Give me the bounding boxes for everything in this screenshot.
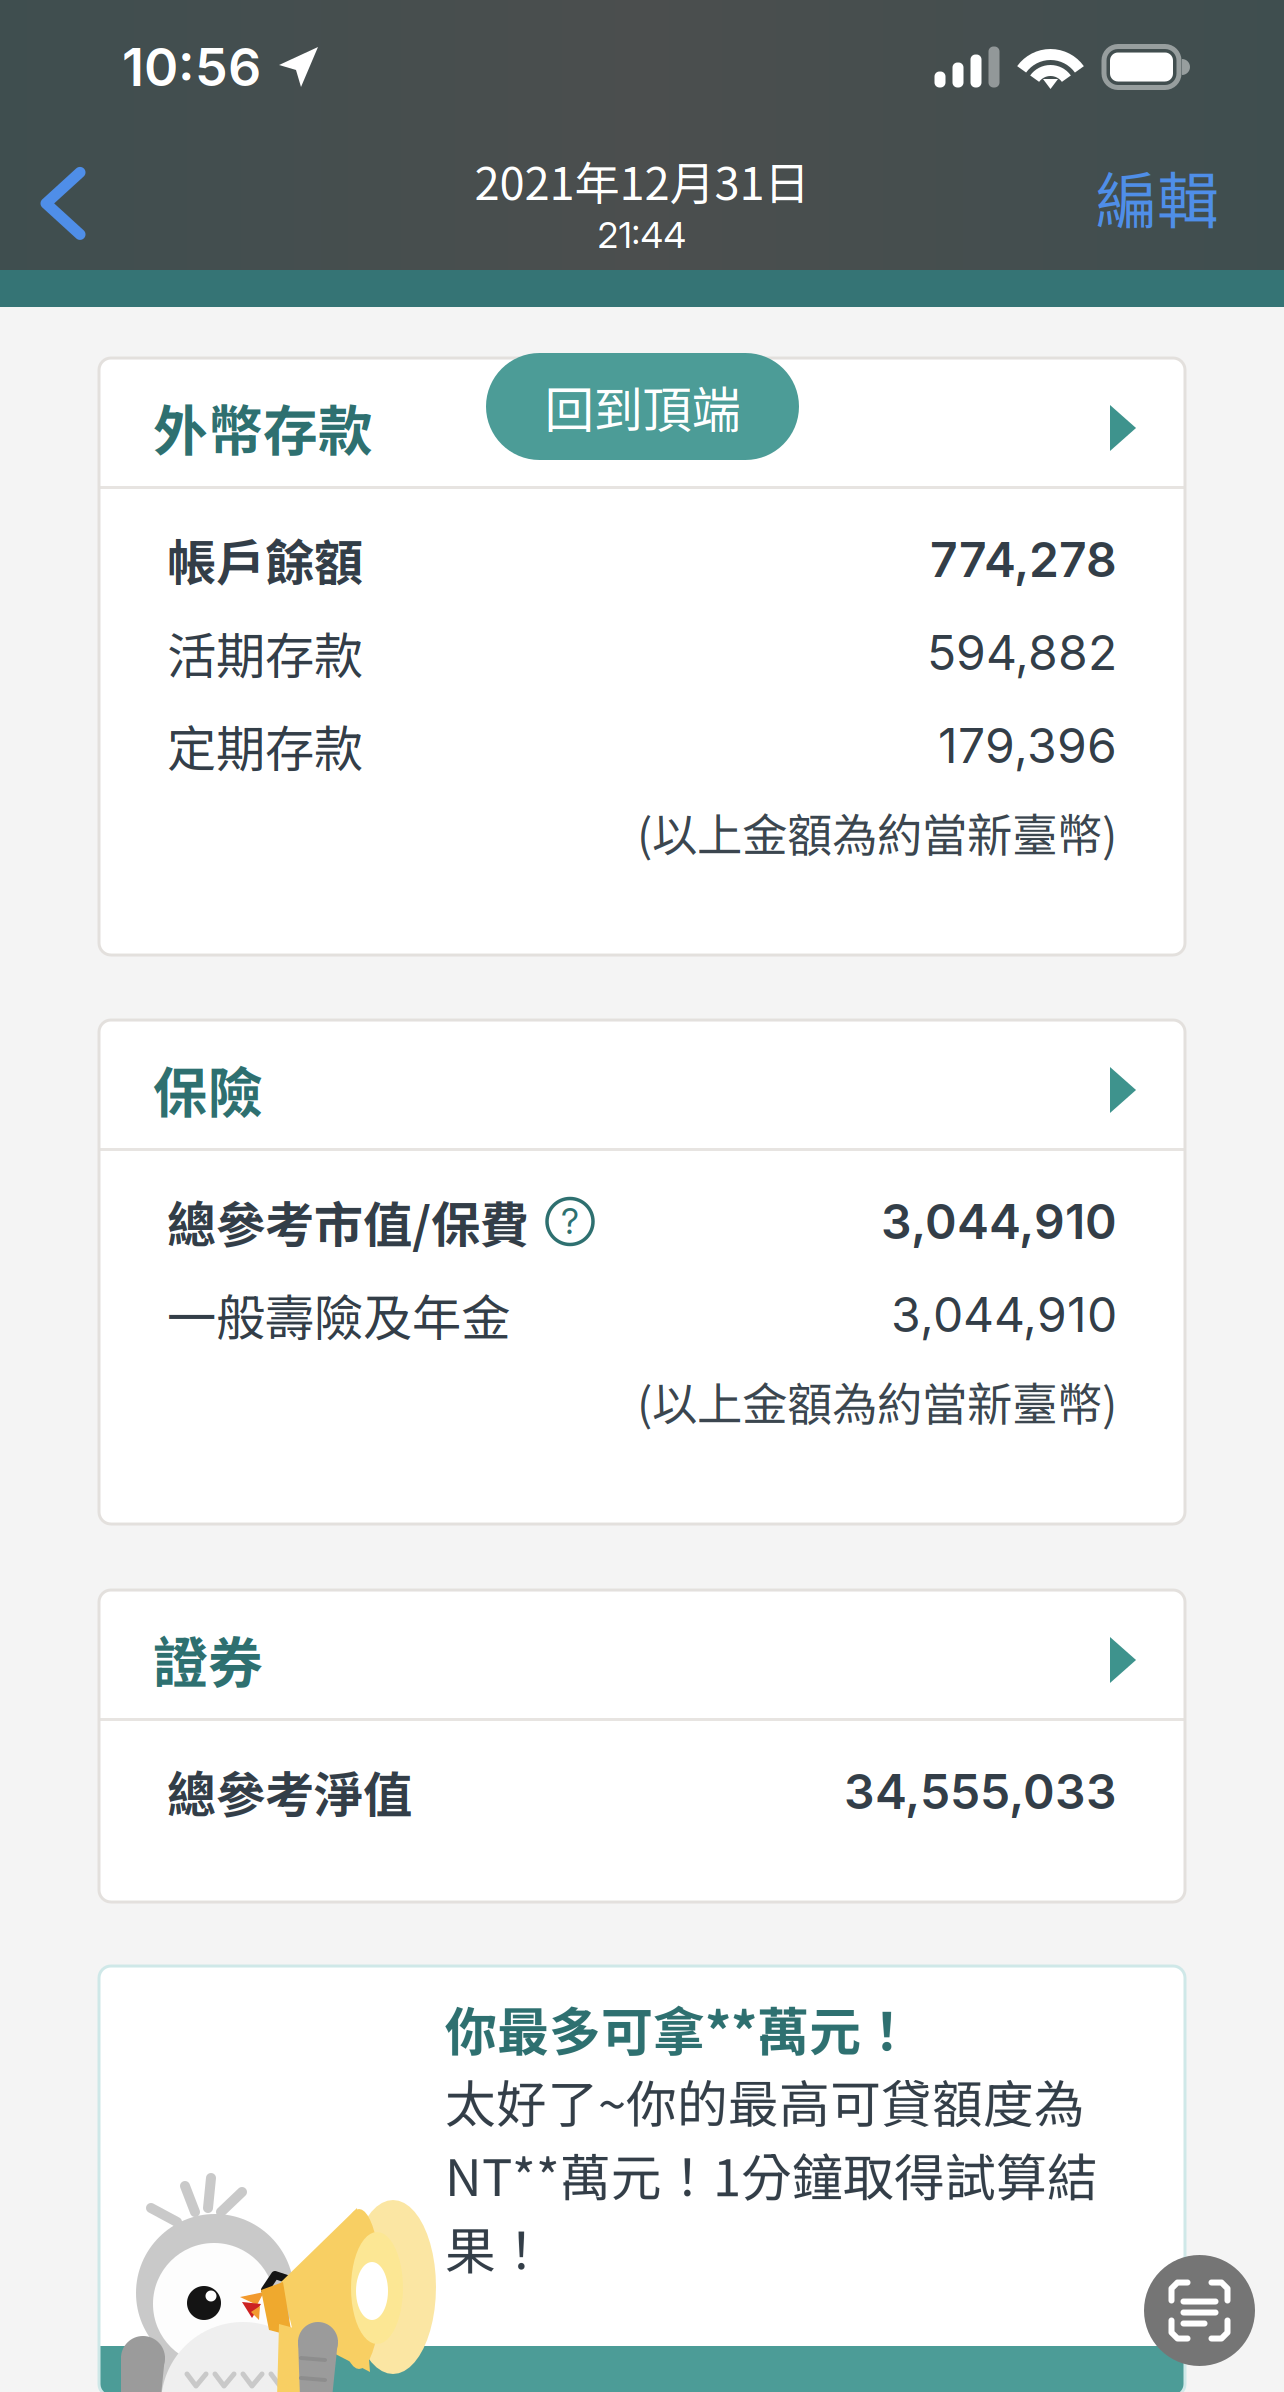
staticText: 保險 — [153, 1049, 263, 1129]
staticText: 太好了~你的最高可貸額度為 NT**萬元！1分鐘取得試算結 果！ — [445, 2064, 1098, 2284]
button[interactable]: 保險 — [99, 1020, 1185, 1148]
staticText: 帳戶餘額 — [167, 524, 363, 595]
staticText: (以上金額為約當新臺幣) — [637, 1368, 1117, 1434]
button[interactable]: Scan document — [1144, 2255, 1255, 2366]
staticText: 活期存款 — [167, 617, 363, 688]
staticText: ? — [561, 1200, 579, 1242]
staticText: 回到頂端 — [544, 371, 740, 442]
staticText: 總參考淨值 — [167, 1756, 412, 1827]
button[interactable]: 回到頂端 — [486, 353, 799, 460]
staticText: 外幣存款 — [153, 387, 373, 467]
button[interactable]: 證券 — [99, 1590, 1185, 1718]
staticText: 編輯 — [1096, 152, 1218, 241]
staticText: 179,396 — [938, 716, 1117, 775]
staticText: 一般壽險及年金 — [167, 1279, 510, 1350]
staticText: 594,882 — [927, 623, 1117, 682]
staticText: 總參考市值/保費 — [167, 1186, 529, 1257]
staticText: 你最多可拿**萬元！ — [445, 1990, 913, 2066]
staticText: 證券 — [153, 1619, 263, 1699]
button[interactable]: 外幣存款 — [99, 358, 1185, 486]
staticText: 34,555,033 — [844, 1762, 1117, 1821]
staticText: 2021年12月31日 — [474, 147, 809, 213]
staticText: (以上金額為約當新臺幣) — [637, 799, 1117, 865]
staticText: 3,044,910 — [891, 1285, 1117, 1344]
staticText: 定期存款 — [167, 710, 363, 781]
button[interactable]: Back — [0, 142, 135, 278]
button[interactable]: 編輯 — [1056, 134, 1284, 287]
staticText: 3,044,910 — [881, 1192, 1117, 1251]
staticText: 10:56 — [122, 35, 261, 98]
staticText: 774,278 — [930, 530, 1117, 589]
button[interactable]: 你最多可拿**萬元！ — [99, 1966, 1185, 2392]
staticText: 21:44 — [597, 213, 686, 257]
